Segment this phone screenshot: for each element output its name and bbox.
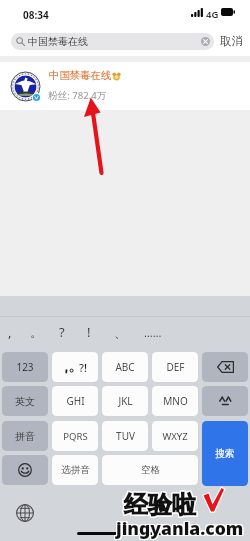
button[interactable]: ! — [76, 320, 102, 344]
staticText: 经验啦 — [125, 489, 197, 519]
button[interactable]: …… — [140, 320, 166, 344]
button[interactable]: 123 — [2, 352, 48, 382]
button[interactable]: 拼音 — [2, 421, 48, 451]
button[interactable]: Emoji keyboard — [2, 455, 48, 485]
staticText: jingyanla.com — [116, 516, 244, 540]
staticText: TUV — [116, 429, 135, 443]
button[interactable]: 取消 — [216, 29, 248, 53]
button[interactable]: TUV — [102, 421, 148, 451]
staticText: 经验啦 — [125, 491, 197, 521]
button[interactable]: DEF — [152, 352, 198, 382]
staticText: DEF — [166, 360, 185, 374]
staticText: 经验啦 — [125, 490, 197, 520]
staticText: jingyanla.com — [117, 516, 245, 540]
staticText: 中国禁毒在线 — [49, 69, 112, 82]
staticText: 经验啦 — [123, 490, 195, 520]
staticText: 经验啦 — [124, 491, 196, 521]
staticText: 拼音 — [15, 430, 35, 443]
button[interactable]: MNO — [152, 386, 198, 416]
button[interactable]: , — [0, 320, 23, 344]
staticText: WXYZ — [162, 430, 188, 443]
staticText: jingyanla.com — [117, 517, 245, 541]
staticText: 搜索 — [215, 448, 235, 460]
staticText: 取消 — [220, 34, 243, 48]
staticText: , — [8, 323, 12, 341]
staticText: …… — [144, 325, 162, 340]
button[interactable]: Clear search text — [201, 37, 210, 46]
button[interactable]: PQRS — [52, 421, 98, 451]
button[interactable]: Punctuation — [52, 352, 98, 382]
button[interactable]: ABC — [102, 352, 148, 382]
staticText: jingyanla.com — [117, 515, 245, 539]
button[interactable]: Delete — [202, 352, 248, 382]
staticText: 4G — [206, 8, 219, 21]
staticText: jingyanla.com — [115, 515, 243, 539]
staticText: 空格 — [141, 464, 160, 476]
staticText: 经验啦 — [124, 489, 196, 519]
staticText: 经验啦 — [123, 489, 195, 519]
button[interactable]: 中国禁毒在线 — [0, 62, 250, 110]
button[interactable]: 中国禁毒在线 — [11, 33, 214, 50]
staticText: 经验啦 — [123, 491, 195, 521]
button[interactable]: GHI — [52, 386, 98, 416]
staticText: ! — [87, 323, 91, 341]
staticText: 中国禁毒在线 — [28, 35, 88, 48]
staticText: ABC — [115, 360, 135, 374]
staticText: 。 — [30, 324, 43, 340]
button[interactable]: Change keyboard language — [16, 504, 34, 522]
button[interactable]: 英文 — [2, 386, 48, 416]
staticText: MNO — [163, 394, 188, 408]
staticText: 123 — [16, 360, 34, 374]
staticText: 英文 — [15, 395, 35, 408]
button[interactable]: 搜索 — [202, 421, 248, 486]
staticText: 08:34 — [23, 8, 49, 22]
staticText: jingyanla.com — [115, 517, 243, 541]
button[interactable]: 空格 — [102, 455, 198, 485]
staticText: GHI — [66, 394, 85, 408]
button[interactable]: 选拼音 — [52, 455, 98, 485]
staticText: ? — [59, 323, 65, 341]
button[interactable]: Shift — [202, 386, 248, 416]
staticText: jingyanla.com — [116, 515, 244, 539]
button[interactable]: WXYZ — [152, 421, 198, 451]
staticText: jingyanla.com — [116, 517, 244, 541]
staticText: 、 — [114, 324, 127, 340]
staticText: JKL — [118, 394, 133, 408]
button[interactable]: ? — [49, 320, 75, 344]
button[interactable]: 、 — [107, 320, 133, 344]
staticText: 经验啦 — [124, 490, 196, 520]
staticText: jingyanla.com — [115, 516, 243, 540]
button[interactable]: 。 — [23, 320, 49, 344]
staticText: ?! — [79, 360, 87, 375]
button[interactable]: JKL — [102, 386, 148, 416]
staticText: 选拼音 — [61, 464, 90, 476]
staticText: PQRS — [63, 430, 88, 443]
staticText: 粉丝: 782.4万 — [48, 89, 107, 102]
